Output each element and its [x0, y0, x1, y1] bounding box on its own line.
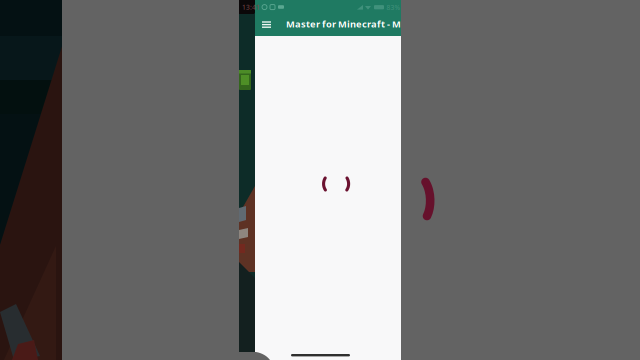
staticText: 13:41: [242, 3, 260, 12]
button[interactable]: Open navigation drawer: [0, 0, 640, 360]
staticText: Master for Minecraft - Mod Launcher: [286, 18, 459, 30]
staticText: 83%: [386, 3, 400, 12]
